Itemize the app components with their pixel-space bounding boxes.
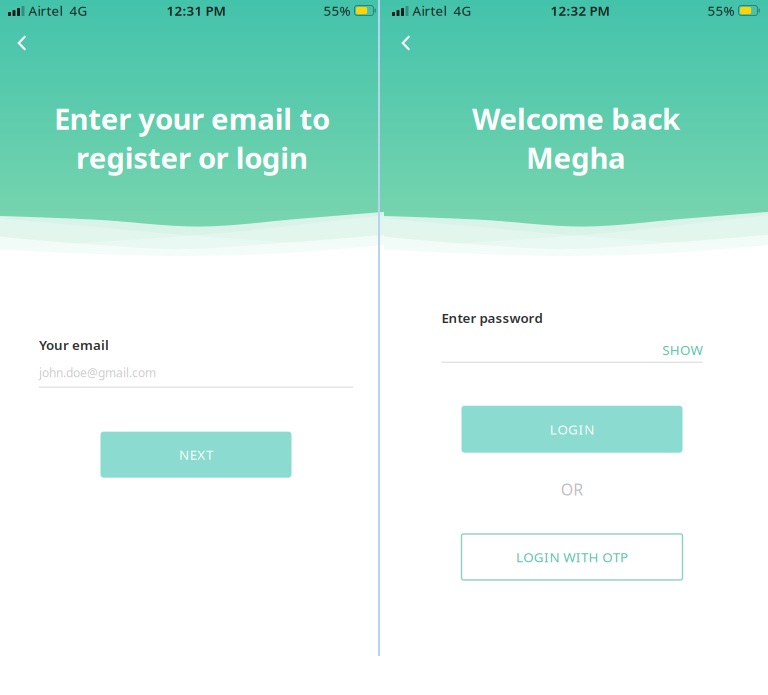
staticText: Welcome back bbox=[472, 99, 680, 138]
staticText: 12:32 PM bbox=[550, 2, 609, 19]
staticText: 55% bbox=[707, 2, 734, 19]
staticText: OR bbox=[561, 479, 583, 500]
staticText: Enter password bbox=[441, 309, 542, 327]
staticText: 55% bbox=[323, 2, 350, 19]
button[interactable]: NEXT bbox=[100, 432, 291, 478]
button[interactable]: LOGIN bbox=[461, 406, 682, 453]
button[interactable]: LOGIN WITH OTP bbox=[461, 534, 682, 580]
staticText: Airtel bbox=[28, 2, 62, 19]
staticText: SHOW bbox=[662, 341, 702, 359]
staticText: 12:31 PM bbox=[166, 2, 225, 19]
staticText: Enter your email to bbox=[54, 99, 330, 138]
button[interactable]: Back bbox=[387, 23, 421, 53]
staticText: Megha bbox=[526, 138, 626, 177]
staticText: LOGIN bbox=[550, 420, 594, 438]
staticText: Your email bbox=[39, 336, 109, 354]
staticText: Airtel bbox=[412, 2, 446, 19]
staticText: NEXT bbox=[179, 446, 213, 463]
staticText: 4G bbox=[453, 2, 471, 19]
staticText: 4G bbox=[69, 2, 87, 19]
staticText: john.doe@gmail.com bbox=[39, 365, 156, 381]
staticText: LOGIN WITH OTP bbox=[516, 548, 628, 566]
button[interactable]: SHOW bbox=[658, 343, 702, 357]
button[interactable]: Back bbox=[3, 23, 37, 53]
staticText: register or login bbox=[76, 138, 308, 177]
